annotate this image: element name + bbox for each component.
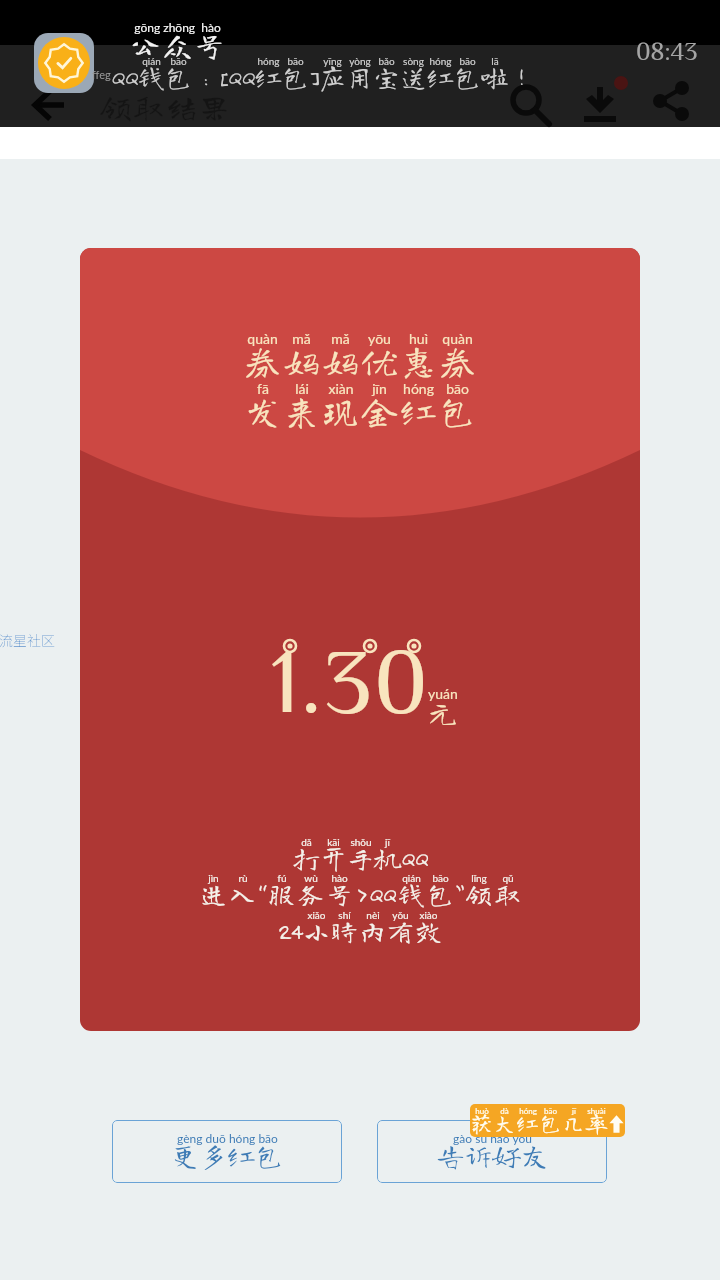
staticText: 包: [427, 880, 454, 907]
staticText: fú: [277, 872, 287, 884]
staticText: bāo: [170, 55, 187, 67]
button[interactable]: gèng duō hóng bāo: [112, 1120, 342, 1183]
staticText: 大: [493, 1112, 516, 1134]
staticText: “: [258, 880, 266, 907]
button[interactable]: Download: [564, 65, 636, 137]
staticText: >: [355, 880, 367, 907]
staticText: 应: [319, 63, 346, 90]
staticText: 领取结果: [99, 90, 231, 123]
staticText: 告诉好友: [436, 1141, 549, 1169]
staticText: bāo: [446, 380, 469, 397]
staticText: ”: [456, 880, 463, 907]
staticText: 内: [359, 917, 386, 944]
staticText: hào: [331, 872, 348, 884]
staticText: wù: [304, 872, 318, 884]
staticText: jìn: [208, 872, 219, 884]
staticText: 宝: [373, 63, 400, 90]
staticText: 时: [331, 917, 358, 944]
staticText: nèi: [366, 909, 380, 921]
staticText: bāo: [544, 1106, 557, 1116]
staticText: 来: [283, 392, 320, 428]
staticText: 有: [387, 917, 414, 944]
staticText: hóng: [429, 55, 452, 67]
staticText: fā: [257, 380, 269, 397]
staticText: 领: [465, 880, 492, 907]
button[interactable]: gào sù hǎo yǒu: [377, 1120, 607, 1183]
staticText: 率: [585, 1112, 608, 1134]
staticText: huò: [475, 1106, 489, 1116]
staticText: bāo: [287, 55, 304, 67]
button[interactable]: huò: [470, 1104, 625, 1137]
staticText: 优: [361, 342, 398, 378]
staticText: 进: [200, 880, 227, 907]
staticText: mǎ: [331, 330, 350, 347]
staticText: bāo: [459, 55, 476, 67]
staticText: 啦: [481, 63, 508, 90]
staticText: 小: [303, 917, 330, 944]
staticText: 机: [374, 844, 401, 871]
staticText: 包: [282, 63, 309, 90]
staticText: ！: [508, 63, 535, 90]
staticText: 开: [320, 844, 347, 871]
staticText: 发: [244, 392, 281, 428]
staticText: 钱: [398, 880, 425, 907]
staticText: 现: [322, 392, 359, 428]
staticText: 妈: [283, 342, 320, 378]
staticText: shuài: [587, 1106, 606, 1116]
staticText: huì: [409, 330, 428, 347]
staticText: ffeg: [92, 68, 111, 81]
staticText: bǎo: [378, 55, 395, 67]
staticText: sòng: [403, 55, 424, 67]
staticText: yòng: [349, 55, 371, 67]
staticText: xiào: [419, 909, 438, 921]
staticText: 公众号: [129, 29, 226, 61]
staticText: 效: [415, 917, 442, 944]
staticText: shí: [338, 909, 351, 921]
staticText: QQ: [111, 63, 138, 90]
staticText: gèng duō hóng bāo: [177, 1131, 278, 1145]
staticText: 妈: [322, 342, 359, 378]
staticText: 送: [400, 63, 427, 90]
staticText: hóng: [257, 55, 280, 67]
staticText: 08:43: [636, 38, 698, 63]
staticText: lā: [491, 55, 499, 67]
staticText: 元: [428, 698, 458, 728]
staticText: quàn: [247, 330, 278, 347]
staticText: 手: [347, 844, 374, 871]
staticText: xiàn: [328, 380, 354, 397]
button[interactable]: Search: [492, 67, 564, 139]
staticText: 流星社区: [0, 630, 55, 650]
staticText: rù: [238, 872, 248, 884]
staticText: 获: [470, 1112, 493, 1134]
staticText: shǒu: [350, 836, 372, 848]
button[interactable]: Share: [636, 65, 708, 137]
staticText: 包: [539, 1112, 562, 1134]
staticText: qián: [142, 55, 161, 67]
staticText: 包: [165, 63, 192, 90]
staticText: 取: [494, 880, 521, 907]
staticText: yuán: [428, 685, 458, 702]
staticText: qián: [402, 872, 421, 884]
staticText: jīn: [372, 380, 387, 397]
staticText: lái: [295, 380, 309, 397]
staticText: xiǎo: [307, 909, 326, 921]
staticText: yōu: [368, 330, 391, 347]
staticText: yīng: [323, 55, 342, 67]
staticText: 包: [454, 63, 481, 90]
staticText: dǎ: [301, 836, 312, 848]
staticText: QQ: [369, 880, 396, 907]
staticText: qǔ: [502, 872, 514, 884]
staticText: 钱: [138, 63, 165, 90]
button[interactable]: Back: [13, 63, 85, 127]
staticText: 入: [229, 880, 256, 907]
staticText: jī: [385, 836, 390, 848]
staticText: hóng: [403, 380, 434, 397]
staticText: kāi: [327, 836, 340, 848]
staticText: 号: [326, 880, 353, 907]
staticText: mǎ: [292, 330, 311, 347]
staticText: 红: [427, 63, 454, 90]
staticText: 红: [516, 1112, 539, 1134]
staticText: hóng: [519, 1106, 537, 1116]
staticText: 服: [268, 880, 295, 907]
staticText: 惠: [400, 342, 437, 378]
